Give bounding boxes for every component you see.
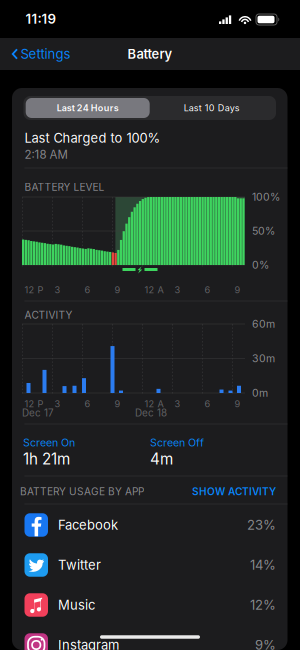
staticText: 6	[204, 285, 210, 295]
staticText: 12 A	[144, 285, 163, 295]
staticText: 14%	[250, 558, 276, 572]
staticText: 3	[54, 399, 60, 409]
staticText: Settings	[20, 47, 70, 61]
staticText: 3	[174, 399, 180, 409]
staticText: BATTERY USAGE BY APP	[20, 486, 144, 497]
staticText: ACTIVITY	[24, 309, 72, 321]
staticText: Dec 18	[135, 407, 167, 418]
staticText: 4m	[150, 450, 173, 467]
button[interactable]: SHOW ACTIVITY	[166, 484, 276, 498]
staticText: 6	[84, 399, 90, 409]
button[interactable]: Twitter	[12, 545, 275, 585]
staticText: 12 P	[24, 285, 43, 295]
staticText: 1h 21m	[23, 450, 70, 467]
staticText: 2:18 AM	[24, 148, 67, 161]
staticText: Twitter	[58, 558, 101, 572]
staticText: 3	[54, 285, 60, 295]
button[interactable]: Last 10 Days	[150, 98, 274, 118]
staticText: Screen On	[23, 437, 75, 448]
staticText: 9	[234, 399, 240, 409]
staticText: 3	[174, 285, 180, 295]
staticText: 12 P	[24, 399, 43, 409]
staticText: 6	[204, 399, 210, 409]
staticText: 9	[234, 285, 240, 295]
staticText: 100%	[252, 191, 280, 203]
staticText: 0m	[252, 387, 268, 399]
staticText: 50%	[252, 225, 275, 237]
staticText: Battery	[127, 47, 172, 61]
staticText: 0%	[252, 259, 269, 271]
staticText: Music	[58, 598, 95, 612]
staticText: Last 24 Hours	[57, 103, 119, 113]
staticText: SHOW ACTIVITY	[192, 486, 276, 497]
staticText: 12 A	[144, 399, 163, 409]
staticText: Screen Off	[150, 437, 204, 448]
staticText: 9%	[255, 638, 276, 650]
staticText: Instagram	[58, 638, 119, 650]
button[interactable]: Facebook	[12, 505, 275, 545]
staticText: 23%	[247, 518, 276, 532]
staticText: 12%	[250, 598, 276, 612]
staticText: Last 10 Days	[184, 103, 240, 113]
staticText: 30m	[252, 353, 275, 364]
button[interactable]: Music	[12, 585, 275, 625]
staticText: Facebook	[58, 518, 118, 532]
staticText: BATTERY LEVEL	[24, 181, 104, 193]
staticText: 6	[84, 285, 90, 295]
staticText: 9	[114, 285, 120, 295]
staticText: Last Charged to 100%	[24, 131, 160, 145]
staticText: 9	[114, 399, 120, 409]
staticText: Dec 17	[22, 407, 54, 418]
staticText: 11:19	[25, 12, 56, 26]
staticText: 60m	[252, 318, 275, 330]
button[interactable]: Instagram	[12, 625, 275, 650]
button[interactable]: Last 24 Hours	[26, 98, 150, 118]
button[interactable]: Settings	[0, 38, 80, 70]
